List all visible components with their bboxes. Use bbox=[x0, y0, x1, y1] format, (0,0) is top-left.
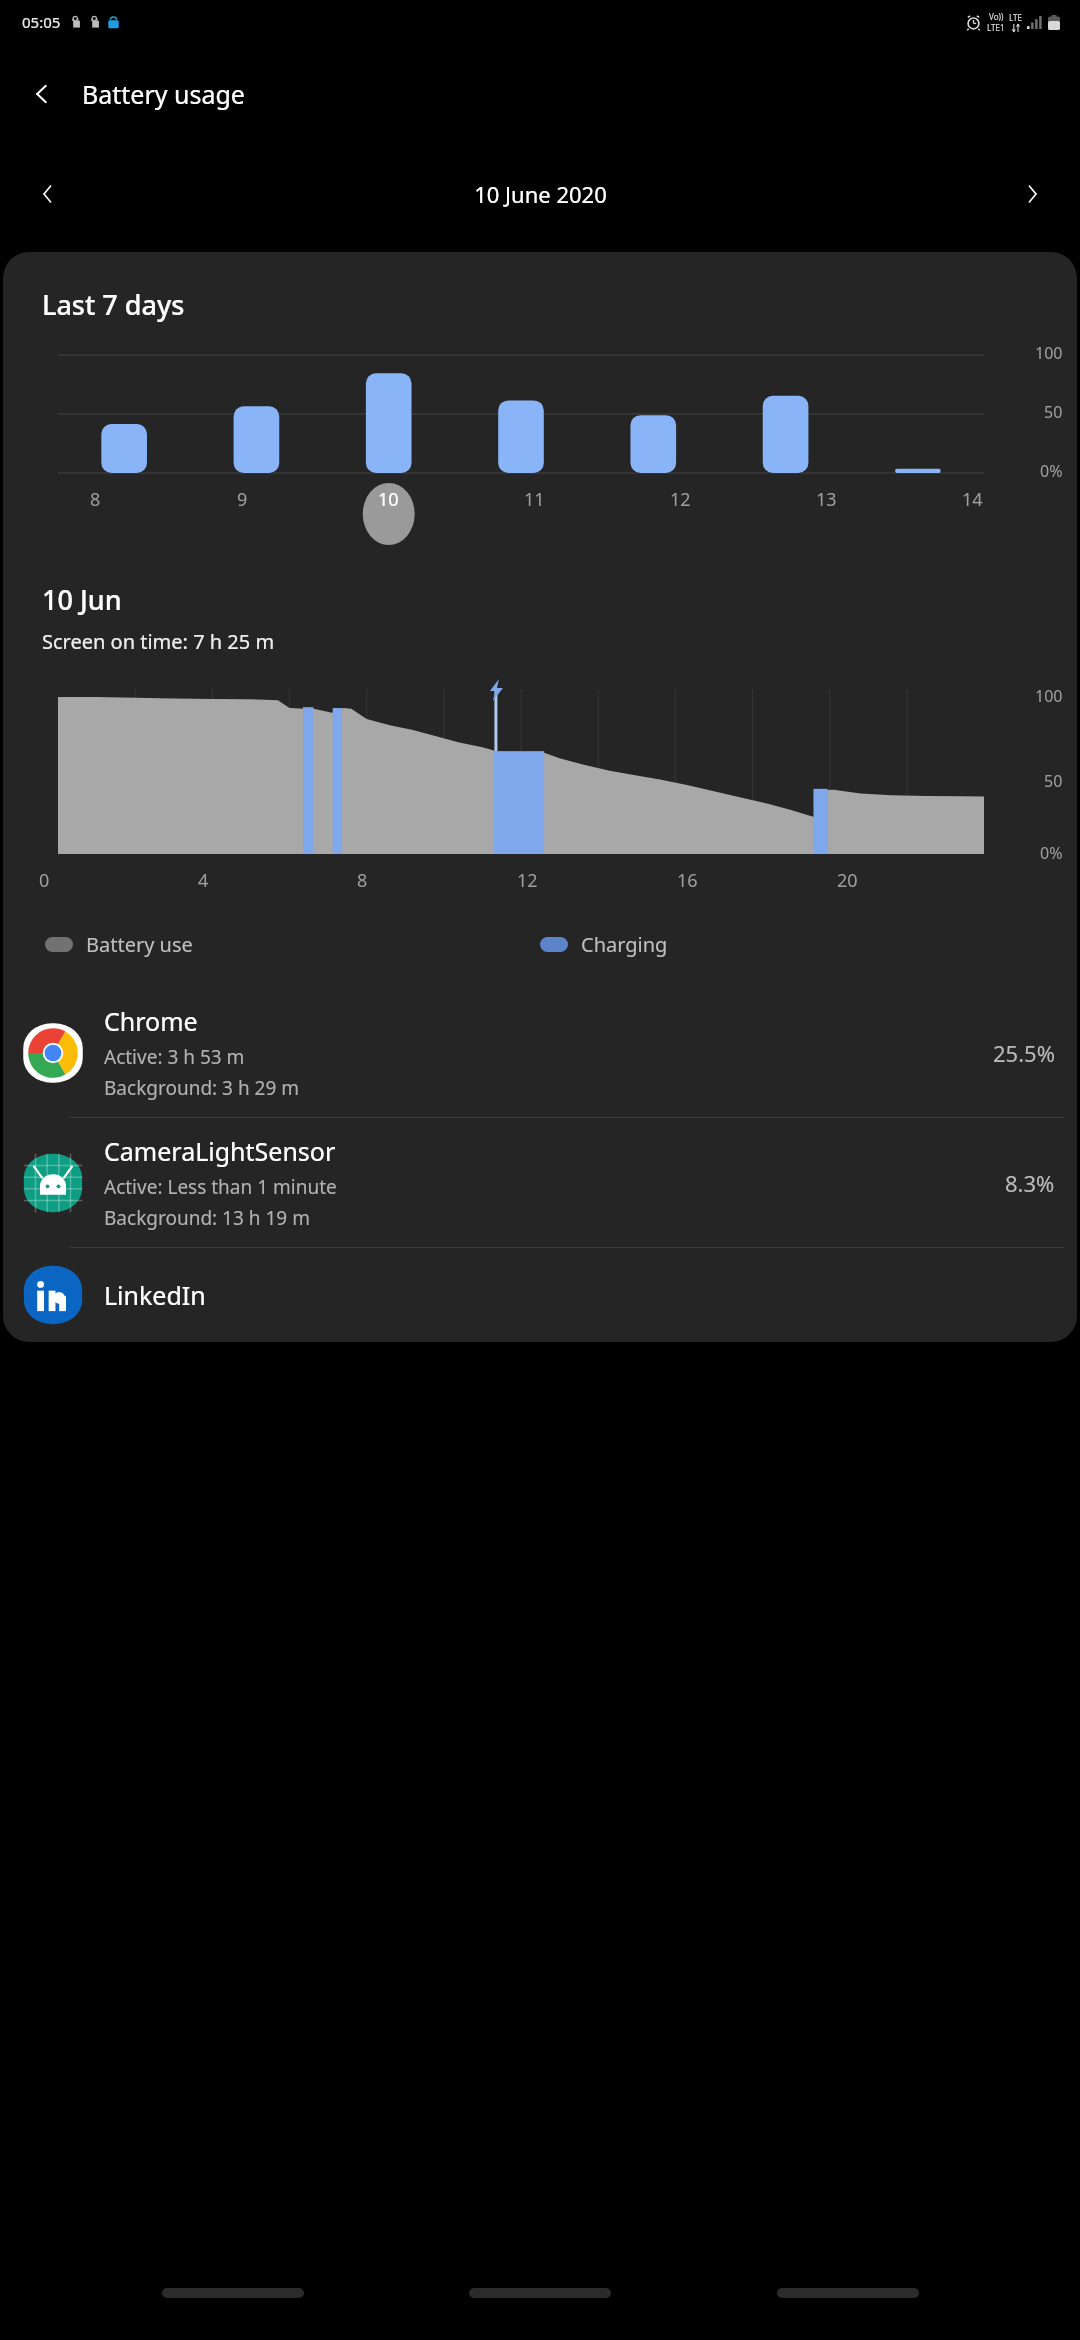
staticText: 0% bbox=[1040, 842, 1063, 864]
staticText: Background: 3 h 29 m bbox=[104, 1075, 300, 1101]
button[interactable]: CameraLightSensor bbox=[3, 1118, 1077, 1247]
staticText: 50 bbox=[1044, 770, 1063, 792]
button[interactable]: Back bbox=[14, 66, 70, 122]
staticText: 11 bbox=[524, 487, 545, 512]
staticText: 8 bbox=[90, 487, 101, 512]
staticText: Active: Less than 1 minute bbox=[104, 1174, 337, 1200]
button[interactable]: Recents bbox=[158, 2273, 308, 2313]
staticText: Active: 3 h 53 m bbox=[104, 1044, 245, 1070]
button[interactable]: Chrome bbox=[3, 988, 1077, 1117]
staticText: 10 bbox=[378, 487, 399, 512]
staticText: 4 bbox=[198, 868, 209, 893]
staticText: Vo)) bbox=[989, 11, 1004, 22]
staticText: 9 bbox=[237, 487, 248, 512]
staticText: 12 bbox=[670, 487, 691, 512]
staticText: 05:05 bbox=[22, 12, 61, 32]
staticText: 13 bbox=[816, 487, 837, 512]
staticText: Battery use bbox=[86, 931, 193, 958]
staticText: Battery usage bbox=[82, 77, 245, 111]
button[interactable]: Previous day bbox=[18, 164, 78, 224]
staticText: 8 bbox=[357, 868, 368, 893]
staticText: 8.3% bbox=[1005, 1168, 1055, 1198]
button[interactable]: LinkedIn bbox=[3, 1248, 1077, 1342]
staticText: Charging bbox=[581, 931, 668, 958]
staticText: LinkedIn bbox=[104, 1278, 206, 1312]
staticText: 50 bbox=[1044, 401, 1063, 423]
staticText: 12 bbox=[517, 868, 538, 893]
staticText: Chrome bbox=[104, 1004, 198, 1038]
staticText: 10 June 2020 bbox=[474, 179, 607, 209]
staticText: 20 bbox=[837, 868, 858, 893]
staticText: 0 bbox=[39, 868, 50, 893]
staticText: 100 bbox=[1035, 685, 1063, 707]
button[interactable]: Home bbox=[465, 2273, 615, 2313]
staticText: Last 7 days bbox=[42, 286, 185, 323]
staticText: 100 bbox=[1035, 342, 1063, 364]
staticText: LTE bbox=[1009, 12, 1022, 23]
staticText: Background: 13 h 19 m bbox=[104, 1205, 310, 1231]
staticText: Screen on time: 7 h 25 m bbox=[42, 628, 275, 655]
staticText: 14 bbox=[962, 487, 983, 512]
staticText: 25.5% bbox=[993, 1038, 1055, 1068]
button[interactable]: Back bbox=[773, 2273, 923, 2313]
staticText: 16 bbox=[677, 868, 698, 893]
button[interactable]: Next day bbox=[1002, 164, 1062, 224]
staticText: LTE1 bbox=[987, 22, 1005, 33]
staticText: 10 Jun bbox=[42, 581, 122, 618]
staticText: 0% bbox=[1040, 460, 1063, 482]
staticText: CameraLightSensor bbox=[104, 1134, 336, 1168]
